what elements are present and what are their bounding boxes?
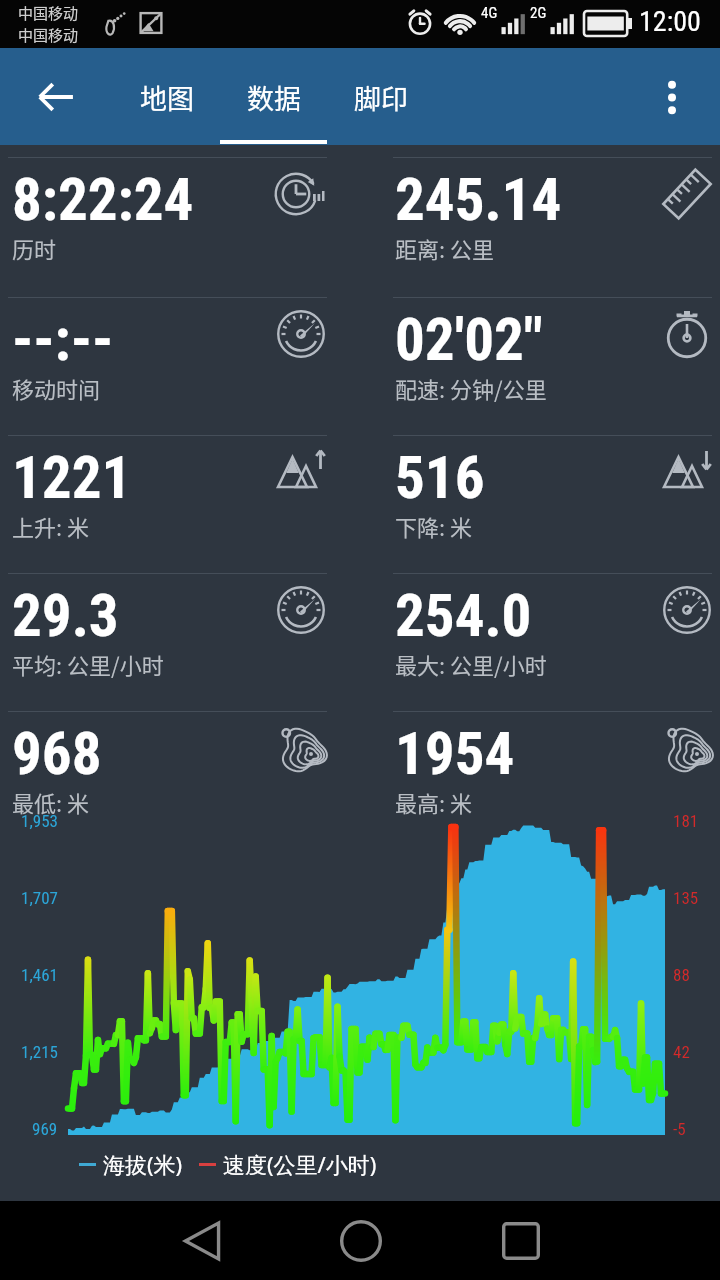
staticText: 29.3 bbox=[12, 581, 119, 650]
staticText: 1221 bbox=[12, 443, 132, 512]
staticText: 下降: 米 bbox=[395, 510, 473, 542]
button[interactable]: Recents bbox=[481, 1201, 561, 1280]
staticText: 245.14 bbox=[395, 165, 562, 234]
button[interactable]: Home bbox=[321, 1201, 401, 1280]
button[interactable]: --:-- bbox=[0, 298, 383, 367]
staticText: 8:22:24 bbox=[12, 165, 194, 234]
staticText: 88 bbox=[673, 965, 690, 985]
staticText: 最大: 公里/小时 bbox=[395, 648, 547, 680]
staticText: 数据 bbox=[247, 78, 301, 117]
staticText: 4G bbox=[481, 4, 498, 22]
staticText: 速度(公里/小时) bbox=[223, 1149, 377, 1179]
staticText: 1,461 bbox=[21, 965, 58, 985]
button[interactable]: Back bbox=[162, 1201, 242, 1280]
staticText: 1,953 bbox=[21, 811, 58, 831]
staticText: 2G bbox=[530, 4, 547, 22]
staticText: 上升: 米 bbox=[12, 510, 90, 542]
staticText: 移动时间 bbox=[12, 372, 101, 404]
button[interactable]: Back bbox=[30, 71, 82, 123]
staticText: 1,215 bbox=[21, 1042, 58, 1062]
staticText: -5 bbox=[673, 1119, 686, 1139]
button[interactable]: 968 bbox=[0, 712, 383, 781]
staticText: 最高: 米 bbox=[395, 786, 473, 818]
staticText: 海拔(米) bbox=[103, 1149, 183, 1179]
staticText: --:-- bbox=[12, 305, 114, 374]
button[interactable]: 245.14 bbox=[383, 158, 720, 227]
staticText: 12:00 bbox=[639, 5, 701, 38]
staticText: 最低: 米 bbox=[12, 786, 90, 818]
button[interactable]: 516 bbox=[383, 436, 720, 505]
button[interactable]: 254.0 bbox=[383, 574, 720, 643]
button[interactable]: 数据 bbox=[220, 48, 327, 145]
staticText: 脚印 bbox=[354, 78, 408, 117]
button[interactable]: 8:22:24 bbox=[0, 158, 383, 227]
staticText: 516 bbox=[395, 443, 485, 512]
staticText: 中国移动 bbox=[18, 24, 79, 46]
staticText: 02'02" bbox=[395, 305, 543, 374]
staticText: 181 bbox=[673, 811, 699, 831]
button[interactable]: 1954 bbox=[383, 712, 720, 781]
staticText: 中国移动 bbox=[18, 2, 79, 24]
staticText: 地图 bbox=[140, 78, 194, 117]
staticText: 968 bbox=[12, 719, 102, 788]
button[interactable]: More options bbox=[646, 71, 698, 123]
staticText: 1,707 bbox=[21, 888, 58, 908]
staticText: 135 bbox=[673, 888, 699, 908]
staticText: 969 bbox=[32, 1119, 58, 1139]
staticText: 1954 bbox=[395, 719, 515, 788]
staticText: 254.0 bbox=[395, 581, 532, 650]
staticText: 距离: 公里 bbox=[395, 232, 495, 264]
button[interactable]: 1221 bbox=[0, 436, 383, 505]
button[interactable]: 脚印 bbox=[327, 48, 434, 145]
button[interactable]: 地图 bbox=[113, 48, 220, 145]
staticText: 配速: 分钟/公里 bbox=[395, 372, 547, 404]
staticText: 42 bbox=[673, 1042, 690, 1062]
button[interactable]: 29.3 bbox=[0, 574, 383, 643]
staticText: 平均: 公里/小时 bbox=[12, 648, 164, 680]
staticText: 历时 bbox=[12, 232, 57, 264]
button[interactable]: 02'02" bbox=[383, 298, 720, 367]
